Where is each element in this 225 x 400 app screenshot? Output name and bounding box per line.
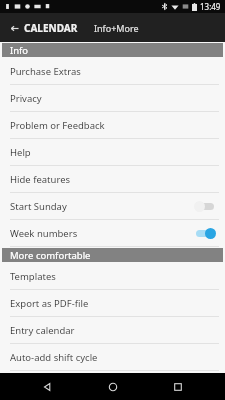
button[interactable]: Start Sunday xyxy=(0,193,225,220)
button[interactable]: Home xyxy=(95,373,131,400)
button[interactable]: Help xyxy=(0,139,225,166)
staticText: Auto-add shift cycle xyxy=(10,351,98,364)
staticText: Info xyxy=(10,44,29,57)
staticText: Templates xyxy=(10,270,56,283)
staticText: Info+More xyxy=(94,22,139,34)
button[interactable]: Entry calendar xyxy=(0,317,225,344)
staticText: Privacy xyxy=(10,92,42,105)
button[interactable]: Back xyxy=(29,373,65,400)
button[interactable]: Back xyxy=(7,18,80,38)
button[interactable]: Hide features xyxy=(0,166,225,193)
button[interactable]: Auto-add shift cycle xyxy=(0,344,225,371)
staticText: Entry calendar xyxy=(10,324,75,337)
staticText: Help xyxy=(10,146,31,159)
staticText: Hide features xyxy=(10,173,71,186)
button[interactable]: Export as PDF-file xyxy=(0,290,225,317)
staticText: Purchase Extras xyxy=(10,65,81,78)
other: Back xyxy=(9,23,19,33)
button[interactable]: Templates xyxy=(0,263,225,290)
staticText: Problem or Feedback xyxy=(10,119,105,132)
button[interactable]: Problem or Feedback xyxy=(0,112,225,139)
button[interactable]: Recent apps xyxy=(160,373,196,400)
staticText: Week numbers xyxy=(10,227,194,240)
button[interactable]: Week numbers xyxy=(0,220,225,247)
staticText: More comfortable xyxy=(10,249,91,262)
button[interactable]: Purchase Extras xyxy=(0,58,225,85)
button[interactable]: Info+More xyxy=(90,17,143,39)
staticText: CALENDAR xyxy=(24,21,78,35)
staticText: 13:49 xyxy=(200,1,221,12)
staticText: Start Sunday xyxy=(10,200,194,213)
staticText: Export as PDF-file xyxy=(10,297,89,310)
button[interactable]: Privacy xyxy=(0,85,225,112)
